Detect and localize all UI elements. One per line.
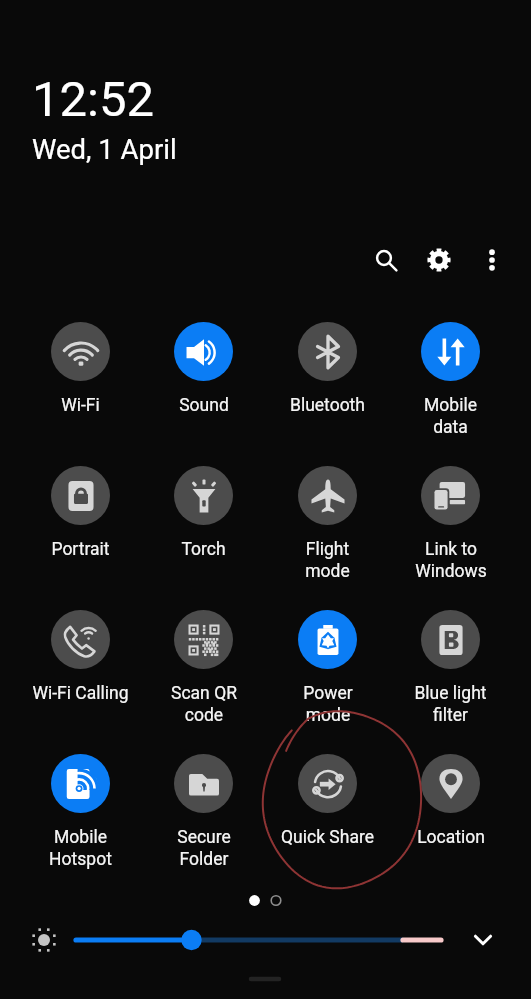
staticText: Wi-Fi (61, 395, 100, 416)
button[interactable]: Portrait (19, 466, 142, 560)
button[interactable]: Location (389, 754, 512, 848)
button[interactable]: Settings (417, 238, 461, 282)
button[interactable]: Blue light filter (389, 610, 512, 725)
staticText: Power mode (303, 683, 353, 725)
button[interactable]: Quick Share (266, 754, 389, 848)
button[interactable]: Power mode (266, 610, 389, 725)
staticText: Mobile Hotspot (49, 827, 112, 869)
button[interactable]: Secure Folder (142, 754, 265, 869)
button[interactable]: More options (470, 238, 514, 282)
button[interactable]: Search (362, 236, 406, 280)
staticText: Location (417, 827, 485, 848)
staticText: Quick Share (281, 827, 374, 848)
staticText: Sound (179, 395, 229, 416)
staticText: Secure Folder (177, 827, 231, 869)
staticText: Blue light filter (414, 683, 487, 725)
staticText: Torch (181, 539, 226, 560)
staticText: Link to Windows (415, 539, 487, 581)
button[interactable]: Bluetooth (266, 322, 389, 416)
button[interactable]: Sound (142, 322, 265, 416)
button[interactable]: Wi-Fi (19, 322, 142, 416)
button[interactable]: Torch (142, 466, 265, 560)
staticText: Wi-Fi Calling (32, 683, 129, 704)
staticText: Flight mode (305, 539, 350, 581)
button[interactable]: Link to Windows (389, 466, 512, 581)
button[interactable]: Flight mode (266, 466, 389, 581)
button[interactable]: Mobile Hotspot (19, 754, 142, 869)
staticText: Portrait (51, 539, 110, 560)
button[interactable]: Scan QR code (142, 610, 265, 725)
staticText: 12:52 (32, 71, 155, 128)
staticText: Wed, 1 April (32, 133, 177, 165)
staticText: Scan QR code (171, 683, 237, 725)
button[interactable]: Wi-Fi Calling (19, 610, 142, 704)
button[interactable]: Expand quick settings (461, 918, 505, 962)
button[interactable]: Mobile data (389, 322, 512, 437)
staticText: Bluetooth (290, 395, 365, 416)
staticText: Mobile data (424, 395, 477, 437)
